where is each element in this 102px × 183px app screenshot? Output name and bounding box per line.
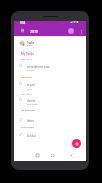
staticText: repair [27, 83, 35, 87]
staticText: smartphone case [27, 65, 50, 69]
button[interactable]: letter [14, 116, 86, 123]
staticText: NO DUE DATE [21, 109, 35, 112]
staticText: 2 visits [27, 69, 35, 72]
staticText: 3 min [27, 44, 33, 47]
button[interactable]: dinner [14, 96, 86, 106]
button[interactable]: More options [78, 28, 85, 35]
button[interactable]: Tasks [14, 38, 86, 48]
staticText: tomorrow [27, 103, 38, 106]
button[interactable]: Exhibit [14, 131, 86, 138]
staticText: Tomorrow [21, 76, 32, 79]
staticText: My Tasks [21, 52, 34, 56]
button[interactable]: Open navigation menu [18, 26, 26, 34]
staticText: 9:15 [27, 87, 32, 90]
button[interactable]: smartphone case [14, 62, 86, 72]
button[interactable]: repair [14, 80, 86, 90]
staticText: Mon, Nov 14 [21, 58, 33, 61]
staticText: 9:04 [20, 21, 26, 25]
staticText: 2019 [30, 29, 38, 34]
staticText: COMPLETED [21, 126, 34, 129]
button[interactable]: Account [68, 28, 74, 34]
staticText: Tasks [27, 41, 35, 45]
staticText: letter [27, 119, 35, 123]
staticText: Mon, Nov 21 [21, 93, 33, 96]
staticText: dinner [27, 99, 36, 103]
button[interactable]: Home [48, 151, 56, 159]
staticText: Exhibit [27, 134, 36, 138]
button[interactable]: Back [67, 151, 75, 159]
button[interactable]: Add task [72, 139, 81, 148]
button[interactable]: Recents [33, 151, 41, 159]
